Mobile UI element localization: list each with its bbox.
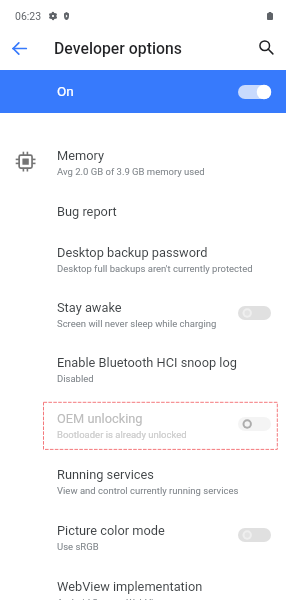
staticText: Memory bbox=[57, 148, 104, 163]
staticText: WebView implementation bbox=[57, 579, 203, 594]
staticText: Screen will never sleep while charging bbox=[57, 318, 217, 329]
staticText: Running services bbox=[57, 467, 154, 482]
staticText: View and control currently running servi… bbox=[57, 485, 239, 496]
staticText: Desktop full backups aren't currently pr… bbox=[57, 263, 253, 274]
button[interactable]: Search bbox=[254, 35, 278, 59]
button[interactable]: Enable Bluetooth HCI snoop log bbox=[0, 342, 286, 397]
button[interactable]: Memory bbox=[0, 134, 286, 190]
staticText: Android System WebView bbox=[57, 597, 166, 600]
staticText: On bbox=[57, 83, 74, 99]
staticText: Disabled bbox=[57, 373, 94, 384]
button[interactable]: Picture color mode bbox=[0, 509, 286, 565]
staticText: Avg 2.0 GB of 3.9 GB memory used bbox=[57, 166, 205, 177]
staticText: Developer options bbox=[54, 39, 182, 58]
staticText: Picture color mode bbox=[57, 523, 165, 538]
staticText: Use sRGB bbox=[57, 541, 99, 552]
staticText: Stay awake bbox=[57, 300, 122, 315]
button[interactable]: OEM unlocking bbox=[0, 397, 286, 454]
staticText: Bug report bbox=[57, 204, 117, 219]
button[interactable]: Stay awake bbox=[0, 287, 286, 342]
button[interactable]: Bug report bbox=[0, 190, 286, 232]
staticText: OEM unlocking bbox=[57, 411, 143, 426]
staticText: Bootloader is already unlocked bbox=[57, 429, 187, 440]
staticText: Enable Bluetooth HCI snoop log bbox=[57, 355, 237, 370]
button[interactable]: Desktop backup password bbox=[0, 232, 286, 287]
button[interactable]: On bbox=[0, 70, 286, 113]
button[interactable]: Navigate up bbox=[7, 36, 31, 60]
button[interactable]: WebView implementation bbox=[0, 565, 286, 600]
staticText: 06:23 bbox=[15, 10, 42, 22]
button[interactable]: Running services bbox=[0, 454, 286, 509]
staticText: Desktop backup password bbox=[57, 245, 208, 260]
